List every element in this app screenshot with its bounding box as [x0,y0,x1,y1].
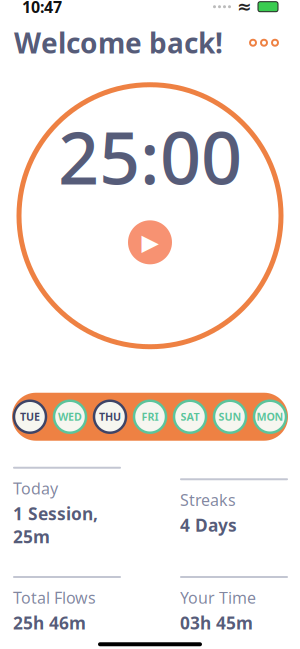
staticText: THU [99,410,121,424]
staticText: 25h 46m [13,611,86,634]
staticText: 03h 45m [180,611,253,634]
staticText: Total Flows [13,587,96,608]
staticText: ≈ [237,0,252,17]
staticText: FRI [141,410,158,424]
staticText: ▶ [141,229,158,255]
staticText: SUN [218,410,241,424]
staticText: 25:00 [58,109,242,204]
staticText: 10:47 [22,0,62,17]
staticText: Welcome back! [14,24,223,61]
button[interactable]: More options [242,32,286,54]
staticText: Today [13,478,58,499]
staticText: Streaks [180,489,236,510]
staticText: MON [256,410,283,424]
staticText: 1 Session, 25m [13,502,98,548]
button[interactable]: Start timer [128,220,172,264]
staticText: 4 Days [180,513,237,536]
staticText: SAT [180,410,199,424]
staticText: WED [58,410,82,424]
staticText: TUE [20,410,40,424]
staticText: Your Time [180,587,256,608]
